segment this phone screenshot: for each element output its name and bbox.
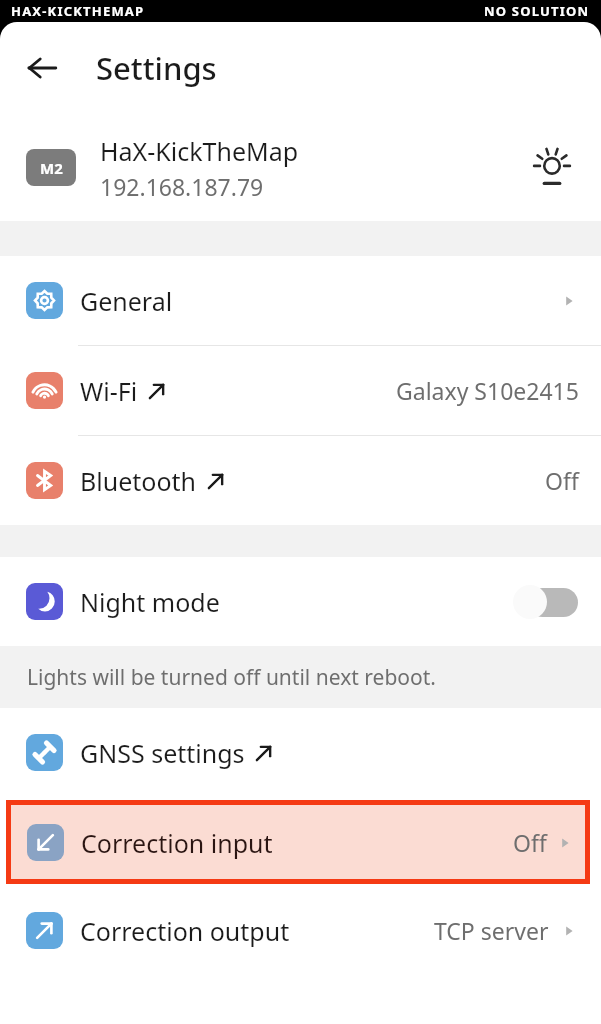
staticText: Correction output [80, 914, 290, 948]
staticText: Galaxy S10e2415 [396, 375, 579, 406]
button[interactable]: Correction input [11, 805, 585, 879]
staticText: HaX-KickTheMap [100, 134, 299, 168]
staticText: 192.168.187.79 [100, 171, 264, 202]
button[interactable]: GNSS settings [0, 708, 601, 797]
staticText: Correction input [81, 826, 513, 860]
staticText: General [80, 284, 173, 318]
button[interactable]: Back [14, 40, 70, 96]
staticText: Bluetooth [80, 464, 197, 498]
staticText: HAX-KICKTHEMAP [11, 2, 145, 20]
button[interactable]: Brightness [525, 141, 579, 195]
button[interactable]: General [0, 256, 601, 345]
staticText: Night mode [80, 585, 220, 619]
button[interactable]: Bluetooth [0, 436, 601, 525]
staticText: Lights will be turned off until next reb… [27, 663, 436, 692]
staticText: Off [513, 827, 547, 858]
staticText: Settings [96, 47, 217, 89]
staticText: Wi-Fi [80, 374, 138, 408]
staticText: GNSS settings [80, 736, 245, 770]
button[interactable]: M2 [0, 114, 601, 221]
staticText: TCP server [434, 915, 549, 946]
staticText: M2 [40, 158, 63, 178]
staticText: Off [545, 465, 579, 496]
button[interactable]: Night mode toggle [513, 584, 579, 620]
staticText: NO SOLUTION [484, 2, 590, 20]
button[interactable]: Correction output [0, 886, 601, 975]
button[interactable]: Wi-Fi [0, 346, 601, 435]
button[interactable]: Night mode [0, 557, 601, 646]
